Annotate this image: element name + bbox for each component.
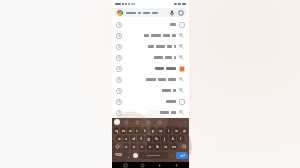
button[interactable]: a: [116, 135, 122, 142]
button[interactable]: j: [161, 135, 168, 142]
staticText: m: [172, 144, 176, 149]
staticText: p: [183, 128, 186, 133]
staticText: r: [136, 128, 138, 133]
button[interactable]: Use this suggestion: [178, 76, 185, 83]
staticText: f: [140, 136, 142, 141]
button[interactable]: h: [153, 135, 160, 142]
button[interactable]: w: [120, 127, 126, 134]
button[interactable]: b: [154, 143, 161, 150]
button[interactable]: Back: [155, 162, 163, 168]
button[interactable]: Use this suggestion: [112, 96, 189, 107]
staticText: z: [125, 144, 127, 149]
button[interactable]: Backspace: [178, 143, 188, 150]
staticText: v: [149, 144, 151, 149]
button[interactable]: p: [181, 127, 188, 134]
staticText: n: [164, 144, 167, 149]
staticText: w: [122, 128, 125, 133]
button[interactable]: Use this suggestion: [112, 85, 189, 96]
button[interactable]: Gboard menu: [114, 119, 120, 125]
staticText: h: [155, 136, 158, 141]
button[interactable]: u: [157, 127, 164, 134]
button[interactable]: Use this suggestion: [178, 87, 185, 94]
button[interactable]: Use this suggestion: [178, 54, 185, 61]
staticText: y: [152, 128, 154, 133]
button[interactable]: Use this suggestion: [112, 41, 189, 52]
staticText: q: [115, 128, 118, 133]
button[interactable]: Use this suggestion: [112, 107, 189, 118]
button[interactable]: Recents: [121, 162, 129, 168]
button[interactable]: s: [123, 135, 129, 142]
button[interactable]: Space: [139, 152, 168, 159]
staticText: ,: [128, 153, 129, 158]
button[interactable]: Use this suggestion: [112, 19, 189, 30]
staticText: g: [147, 136, 150, 141]
staticText: u: [159, 128, 162, 133]
button[interactable]: l: [177, 135, 184, 142]
button[interactable]: Toolbar action: [135, 120, 139, 124]
button[interactable]: m: [170, 143, 177, 150]
staticText: a: [118, 136, 121, 141]
staticText: j: [164, 136, 165, 141]
staticText: .: [172, 153, 173, 158]
button[interactable]: Use this suggestion: [178, 109, 185, 116]
button[interactable]: Use this suggestion: [178, 43, 185, 50]
button[interactable]: t: [141, 127, 148, 134]
button[interactable]: Toolbar action: [146, 120, 150, 124]
staticText: d: [132, 136, 135, 141]
button[interactable]: i: [165, 127, 172, 134]
button[interactable]: x: [130, 143, 137, 150]
button[interactable]: Use this suggestion: [178, 32, 185, 39]
button[interactable]: y: [149, 127, 156, 134]
button[interactable]: c: [138, 143, 145, 150]
button[interactable]: o: [173, 127, 180, 134]
button[interactable]: Voice search: [169, 10, 175, 16]
staticText: e: [129, 128, 132, 133]
staticText: ?123: [115, 153, 122, 157]
button[interactable]: Use this suggestion: [178, 21, 185, 28]
button[interactable]: Voice search: [114, 8, 187, 17]
button[interactable]: k: [169, 135, 176, 142]
staticText: o: [175, 128, 178, 133]
button[interactable]: Emoji: [132, 151, 138, 159]
button[interactable]: q: [113, 127, 119, 134]
button[interactable]: Use this suggestion: [112, 74, 189, 85]
staticText: b: [156, 144, 159, 149]
button[interactable]: Use this suggestion: [112, 63, 189, 74]
button[interactable]: Home: [138, 162, 146, 168]
button[interactable]: z: [123, 143, 129, 150]
button[interactable]: ?123: [113, 151, 124, 159]
button[interactable]: Use this suggestion: [112, 52, 189, 63]
staticText: l: [180, 136, 181, 141]
button[interactable]: Use this suggestion: [178, 98, 185, 105]
button[interactable]: f: [137, 135, 144, 142]
button[interactable]: e: [127, 127, 133, 134]
staticText: k: [172, 136, 174, 141]
staticText: s: [125, 136, 127, 141]
button[interactable]: Comma: [125, 151, 131, 159]
staticText: i: [168, 128, 169, 133]
button[interactable]: Period: [169, 151, 175, 159]
button[interactable]: r: [134, 127, 140, 134]
button[interactable]: More options: [183, 120, 187, 124]
staticText: c: [141, 144, 143, 149]
button[interactable]: Toolbar action: [124, 120, 128, 124]
button[interactable]: v: [146, 143, 153, 150]
button[interactable]: g: [145, 135, 152, 142]
button[interactable]: Use this suggestion: [178, 65, 185, 72]
staticText: x: [133, 144, 135, 149]
button[interactable]: Tabs: [178, 10, 184, 16]
button[interactable]: n: [162, 143, 169, 150]
button[interactable]: Enter: [176, 152, 188, 159]
button[interactable]: Shift: [113, 143, 122, 150]
button[interactable]: Hide keyboard: [172, 162, 180, 168]
button[interactable]: Toolbar action: [157, 120, 161, 124]
button[interactable]: Use this suggestion: [112, 30, 189, 41]
button[interactable]: d: [130, 135, 136, 142]
staticText: t: [144, 128, 146, 133]
